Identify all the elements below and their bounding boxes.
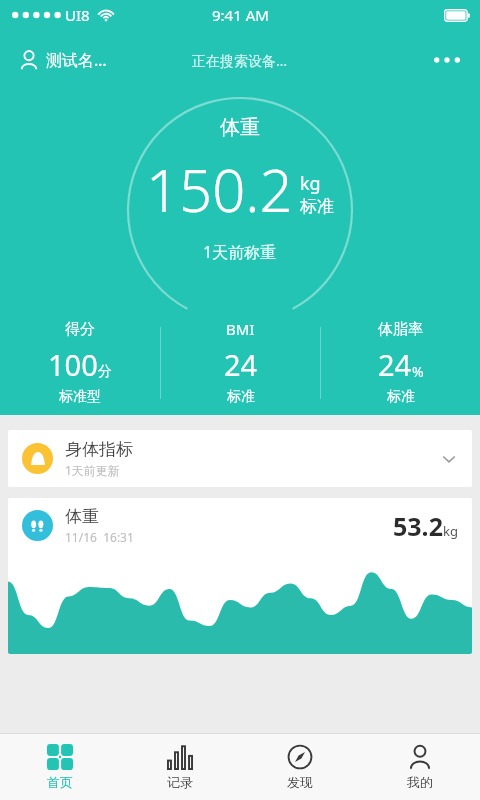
staticText: 得分 (65, 320, 95, 339)
staticText: 24 (378, 345, 412, 384)
button[interactable]: More options (424, 47, 470, 73)
button[interactable]: BMI (161, 319, 320, 406)
staticText: 1天前更新 (65, 462, 120, 478)
staticText: 发现 (287, 774, 313, 790)
staticText: BMI (226, 319, 255, 339)
staticText: 53.2 (393, 509, 443, 543)
staticText: 标准 (387, 388, 415, 406)
button[interactable]: 我的 (360, 734, 480, 800)
other: Expand (440, 450, 458, 468)
button[interactable]: 得分 (0, 320, 160, 406)
staticText: 首页 (47, 774, 73, 790)
button[interactable]: 首页 (0, 734, 120, 800)
button[interactable]: 体重 (8, 498, 472, 654)
staticText: 标准 (227, 388, 255, 406)
staticText: 身体指标 (65, 439, 133, 460)
staticText: 体脂率 (378, 320, 423, 339)
button[interactable]: 记录 (120, 734, 240, 800)
staticText: 体重 (220, 115, 260, 140)
staticText: kg (300, 171, 321, 196)
staticText: 100 (48, 345, 98, 384)
staticText: 150.2 (146, 150, 293, 229)
staticText: UI8 (65, 5, 90, 25)
staticText: 分 (98, 363, 112, 381)
button[interactable]: 体脂率 (321, 320, 480, 406)
staticText: 体重 (65, 506, 99, 527)
staticText: 11/16 16:31 (65, 529, 134, 545)
staticText: 1天前称重 (203, 241, 277, 263)
staticText: 9:41 AM (212, 5, 269, 25)
staticText: 记录 (167, 774, 193, 790)
staticText: 标准型 (59, 388, 101, 406)
staticText: kg (443, 522, 458, 540)
staticText: % (412, 362, 424, 381)
staticText: 24 (224, 345, 258, 384)
button[interactable]: 测试名… (14, 43, 111, 77)
staticText: 正在搜索设备… (192, 51, 288, 70)
button[interactable]: 发现 (240, 734, 360, 800)
staticText: 标准 (300, 196, 334, 217)
button[interactable]: 身体指标 (8, 430, 472, 487)
staticText: 测试名… (46, 49, 107, 71)
staticText: 我的 (407, 774, 433, 790)
